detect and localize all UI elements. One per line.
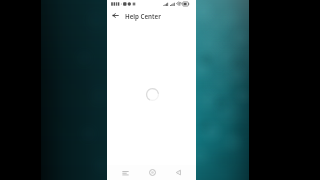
staticText: Help Center: [125, 12, 161, 20]
button[interactable]: Recent apps: [116, 165, 134, 180]
button[interactable]: Back: [169, 165, 187, 180]
button[interactable]: Back: [110, 10, 121, 21]
button[interactable]: Home: [143, 165, 161, 180]
